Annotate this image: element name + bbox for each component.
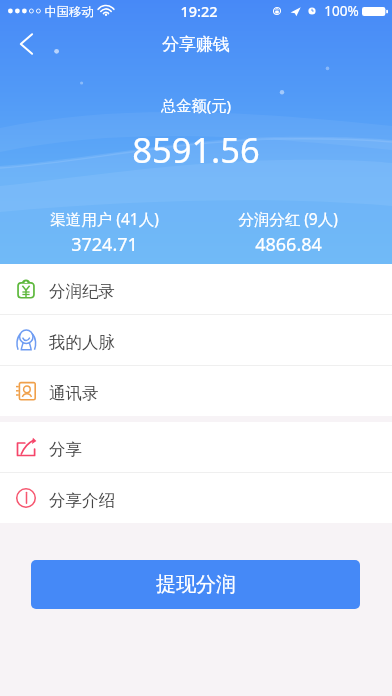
staticText: 总金额(元) — [161, 95, 231, 116]
staticText: 分润纪录 — [49, 281, 115, 302]
staticText: 分享介绍 — [49, 490, 115, 511]
staticText: 19:22 — [180, 1, 218, 21]
button[interactable]: Back — [0, 22, 44, 66]
button[interactable]: 分享介绍 — [0, 473, 392, 523]
button[interactable]: 分享 — [0, 422, 392, 472]
staticText: 渠道用户 (41人) — [50, 208, 159, 229]
staticText: 提现分润 — [156, 572, 236, 597]
staticText: 通讯录 — [49, 383, 99, 404]
staticText: 分享赚钱 — [162, 34, 230, 55]
staticText: 3724.71 — [71, 232, 138, 257]
staticText: 我的人脉 — [49, 332, 115, 353]
staticText: 分润分红 (9人) — [238, 208, 338, 229]
button[interactable]: 我的人脉 — [0, 315, 392, 365]
staticText: 8591.56 — [132, 126, 260, 173]
staticText: 100% — [324, 2, 359, 20]
staticText: 4866.84 — [255, 232, 322, 257]
button[interactable]: 分润纪录 — [0, 264, 392, 314]
staticText: 分享 — [49, 439, 82, 460]
button[interactable]: 提现分润 — [31, 560, 360, 609]
staticText: 中国移动 — [44, 4, 94, 19]
button[interactable]: 通讯录 — [0, 366, 392, 416]
